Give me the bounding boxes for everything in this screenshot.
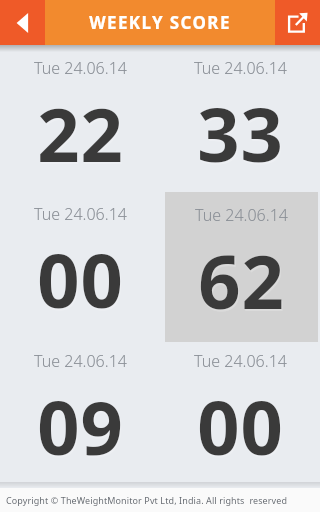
staticText: 00 [197,376,284,477]
staticText: Tue 24.06.14 [34,350,127,372]
staticText: 62 [199,232,286,333]
button[interactable]: Tue 24.06.14 [160,344,320,482]
staticText: 09 [38,378,125,479]
staticText: Copyright © TheWeightMonitor Pvt Ltd, In… [6,494,288,506]
button[interactable]: Tue 24.06.14 [0,52,160,188]
staticText: Tue 24.06.14 [194,350,287,372]
staticText: 00 [198,378,285,479]
button[interactable]: Share [275,0,320,45]
staticText: 62 [198,230,285,331]
staticText: Tue 24.06.14 [34,57,127,79]
staticText: WEEKLY SCORE [89,11,231,34]
staticText: 09 [37,376,124,477]
staticText: 00 [37,229,124,330]
staticText: Tue 24.06.14 [34,203,127,225]
staticText: 22 [38,85,125,186]
staticText: 00 [38,231,125,332]
button[interactable]: Tue 24.06.14 [0,188,160,344]
button[interactable]: Tue 24.06.14 [165,192,318,342]
staticText: Tue 24.06.14 [194,57,287,79]
button[interactable]: Tue 24.06.14 [0,344,160,482]
button[interactable]: Tue 24.06.14 [160,52,320,188]
staticText: 33 [197,83,284,184]
button[interactable]: Back [0,0,45,45]
staticText: 22 [37,83,124,184]
staticText: 33 [198,85,285,186]
staticText: Tue 24.06.14 [195,204,288,226]
